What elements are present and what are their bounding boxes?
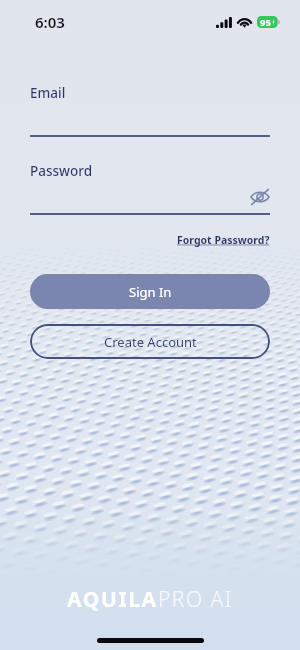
staticText: Sign In	[129, 283, 172, 301]
staticText: AQUILA	[67, 585, 158, 614]
staticText: PRO AI	[158, 585, 233, 614]
button[interactable]: Forgot Password?	[177, 233, 270, 247]
staticText: Email	[30, 84, 66, 102]
staticText: 6:03	[35, 12, 65, 32]
button[interactable]: Show password	[250, 187, 270, 207]
button[interactable]: Sign In	[30, 274, 270, 309]
staticText: Create Account	[104, 333, 197, 351]
staticText: Forgot Password?	[177, 233, 270, 247]
staticText: Password	[30, 162, 93, 180]
staticText: 95	[260, 16, 271, 28]
button[interactable]: Create Account	[30, 324, 270, 359]
